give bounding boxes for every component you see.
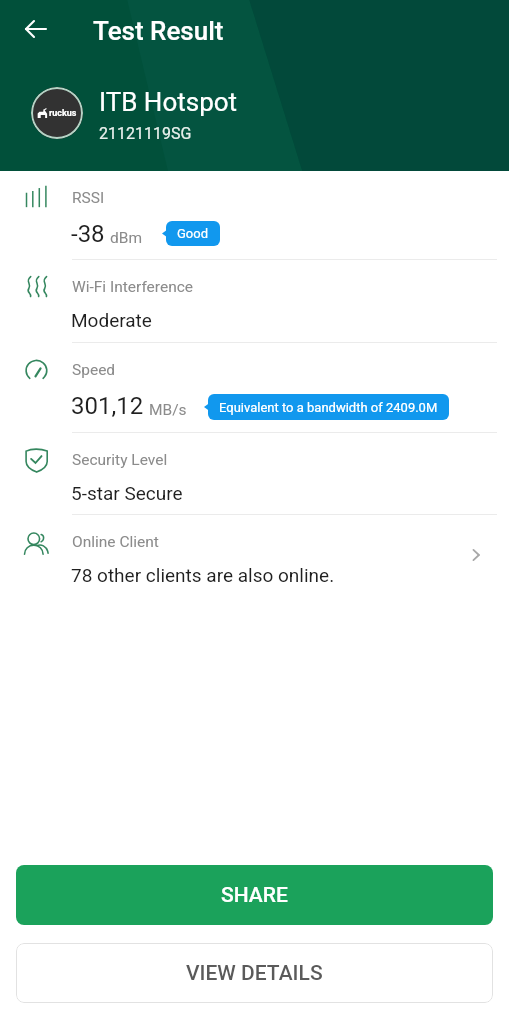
staticText: 21121119SG — [99, 124, 192, 143]
staticText: MB/s — [149, 401, 187, 419]
staticText: 5-star Secure — [71, 482, 183, 504]
button[interactable]: RSSI — [0, 171, 509, 260]
button[interactable]: Online Client — [0, 515, 509, 597]
staticText: ITB Hotspot — [99, 87, 238, 117]
staticText: Wi-Fi Interference — [72, 278, 194, 296]
staticText: -38 — [71, 220, 105, 248]
staticText: VIEW DETAILS — [186, 961, 323, 986]
staticText: 301,12 — [71, 392, 144, 420]
staticText: Online Client — [72, 533, 159, 551]
staticText: Equivalent to a bandwidth of 2409.0M — [219, 400, 438, 415]
staticText: 78 other clients are also online. — [71, 564, 335, 586]
staticText: ruckus — [49, 108, 77, 119]
staticText: SHARE — [221, 883, 288, 908]
button[interactable]: Speed — [0, 343, 509, 433]
staticText: Speed — [72, 361, 116, 379]
button[interactable]: Back — [12, 5, 60, 53]
button[interactable]: Online client details — [460, 539, 492, 571]
staticText: Test Result — [93, 16, 224, 46]
staticText: dBm — [110, 229, 142, 247]
button[interactable]: SHARE — [16, 865, 493, 925]
button[interactable]: Security Level — [0, 433, 509, 515]
staticText: Security Level — [72, 451, 168, 469]
staticText: RSSI — [72, 189, 105, 207]
button[interactable]: VIEW DETAILS — [16, 943, 493, 1003]
staticText: Moderate — [71, 309, 152, 331]
staticText: Good — [177, 226, 209, 241]
button[interactable]: Wi-Fi Interference — [0, 260, 509, 343]
